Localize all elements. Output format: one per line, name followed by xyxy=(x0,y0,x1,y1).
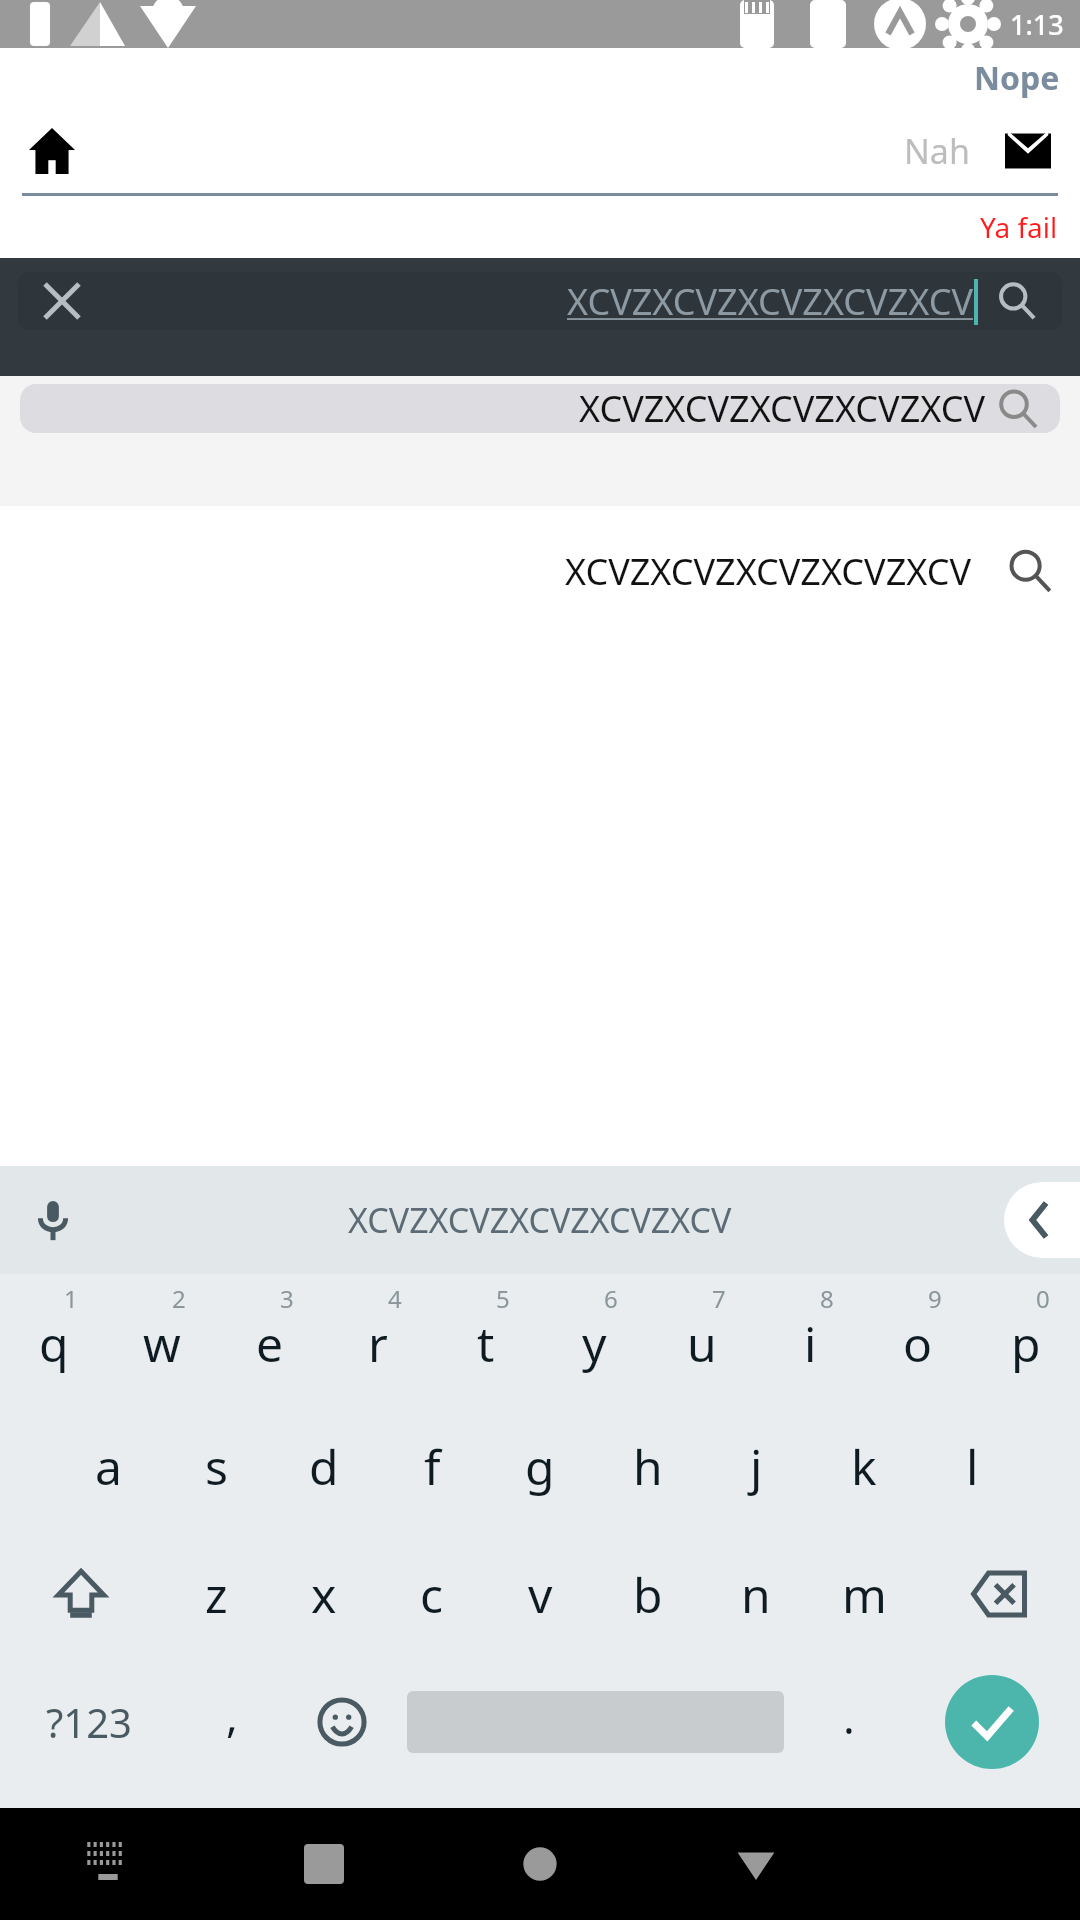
staticText: l xyxy=(966,1434,979,1499)
staticText: 1:13 xyxy=(1010,6,1064,43)
staticText: o xyxy=(903,1311,933,1376)
button[interactable]: Mail xyxy=(996,119,1060,183)
staticText: 3 xyxy=(280,1282,294,1315)
staticText: c xyxy=(420,1562,444,1627)
button[interactable]: Space xyxy=(397,1658,794,1786)
button[interactable]: Backspace xyxy=(918,1530,1080,1658)
button[interactable]: f xyxy=(378,1402,486,1530)
button[interactable]: l xyxy=(918,1402,1026,1530)
staticText: y xyxy=(582,1311,607,1376)
button[interactable]: x xyxy=(270,1530,378,1658)
staticText: t xyxy=(477,1311,495,1376)
staticText: a xyxy=(95,1434,122,1499)
button[interactable]: g xyxy=(486,1402,594,1530)
button[interactable]: 8 xyxy=(756,1274,864,1402)
staticText: 7 xyxy=(712,1282,726,1315)
button[interactable]: XCVZXCVZXCVZXCVZXCV xyxy=(0,506,1080,636)
button[interactable]: Shift xyxy=(0,1530,162,1658)
button[interactable]: s xyxy=(162,1402,270,1530)
button[interactable]: 3 xyxy=(216,1274,324,1402)
staticText: h xyxy=(633,1434,663,1499)
button[interactable]: j xyxy=(702,1402,810,1530)
staticText: x xyxy=(311,1562,337,1627)
button[interactable]: Nope xyxy=(974,56,1060,100)
button[interactable]: n xyxy=(702,1530,810,1658)
button[interactable]: c xyxy=(378,1530,486,1658)
button[interactable]: 7 xyxy=(648,1274,756,1402)
staticText: XCVZXCVZXCVZXCVZXCV xyxy=(579,384,986,433)
staticText: 2 xyxy=(172,1282,186,1315)
staticText: 4 xyxy=(388,1282,402,1315)
button[interactable]: More suggestions xyxy=(1004,1182,1080,1258)
button[interactable]: 9 xyxy=(864,1274,972,1402)
button[interactable]: Hide keyboard xyxy=(0,1808,216,1920)
button[interactable]: 4 xyxy=(324,1274,432,1402)
button[interactable]: ?123 xyxy=(0,1658,177,1786)
button[interactable]: 5 xyxy=(432,1274,540,1402)
staticText: f xyxy=(424,1434,441,1499)
staticText: d xyxy=(309,1434,339,1499)
staticText: . xyxy=(843,1687,855,1747)
button[interactable]: Voice input xyxy=(20,1187,86,1253)
button[interactable]: k xyxy=(810,1402,918,1530)
button[interactable]: h xyxy=(594,1402,702,1530)
button[interactable]: Emoji xyxy=(287,1658,397,1786)
staticText: e xyxy=(256,1311,284,1376)
button[interactable]: . xyxy=(794,1658,904,1786)
button[interactable]: XCVZXCVZXCVZXCVZXCV xyxy=(348,1197,732,1243)
button[interactable]: m xyxy=(810,1530,918,1658)
staticText: w xyxy=(143,1311,181,1376)
button[interactable]: 1 xyxy=(0,1274,108,1402)
button[interactable]: , xyxy=(177,1658,287,1786)
button[interactable]: z xyxy=(162,1530,270,1658)
button[interactable]: Search xyxy=(988,272,1046,330)
staticText: z xyxy=(205,1562,228,1627)
button[interactable]: b xyxy=(594,1530,702,1658)
staticText: Ya fail xyxy=(980,208,1058,246)
staticText: i xyxy=(804,1311,817,1376)
button[interactable]: v xyxy=(486,1530,594,1658)
button[interactable]: 2 xyxy=(108,1274,216,1402)
button[interactable]: Close search xyxy=(34,273,90,329)
button[interactable]: XCVZXCVZXCVZXCVZXCV xyxy=(20,384,1060,433)
staticText: u xyxy=(687,1311,717,1376)
button[interactable]: 0 xyxy=(972,1274,1080,1402)
staticText: n xyxy=(741,1562,771,1627)
button[interactable]: Recents xyxy=(216,1808,432,1920)
staticText: s xyxy=(205,1434,228,1499)
staticText: , xyxy=(226,1685,238,1745)
button[interactable]: 6 xyxy=(540,1274,648,1402)
button[interactable]: Home xyxy=(432,1808,648,1920)
staticText: r xyxy=(368,1311,388,1376)
staticText: p xyxy=(1011,1311,1041,1376)
staticText: 5 xyxy=(496,1282,510,1315)
staticText: m xyxy=(842,1562,887,1627)
button[interactable]: Home xyxy=(20,119,84,183)
staticText: 6 xyxy=(604,1282,618,1315)
staticText: XCVZXCVZXCVZXCVZXCV xyxy=(565,547,972,596)
staticText: XCVZXCVZXCVZXCVZXCV xyxy=(567,277,974,326)
staticText: j xyxy=(750,1434,763,1499)
staticText: 8 xyxy=(820,1282,834,1315)
staticText: b xyxy=(633,1562,663,1627)
staticText: k xyxy=(851,1434,877,1499)
staticText: 0 xyxy=(1036,1282,1050,1315)
button[interactable]: Nah xyxy=(904,128,970,174)
staticText: 9 xyxy=(928,1282,942,1315)
button[interactable]: Enter xyxy=(904,1658,1080,1786)
staticText: ?123 xyxy=(46,1695,132,1749)
button[interactable]: Back xyxy=(648,1808,864,1920)
staticText: g xyxy=(525,1434,555,1499)
button[interactable]: d xyxy=(270,1402,378,1530)
button[interactable]: a xyxy=(54,1402,162,1530)
staticText: v xyxy=(528,1562,553,1627)
staticText: 1 xyxy=(64,1282,78,1315)
staticText: q xyxy=(39,1311,69,1376)
